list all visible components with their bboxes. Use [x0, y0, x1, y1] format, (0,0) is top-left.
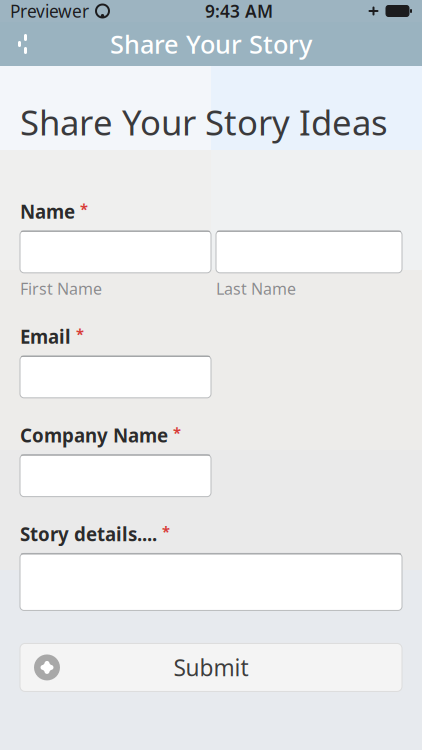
staticText: Story details.... [20, 522, 157, 546]
staticText: Previewer [10, 0, 89, 22]
staticText: * [162, 522, 170, 541]
button[interactable]: First Name [20, 231, 211, 273]
button[interactable]: Submit [20, 643, 402, 691]
staticText: Company Name [20, 423, 168, 448]
staticText: Share Your Story Ideas [20, 99, 388, 145]
button[interactable]: Back [0, 22, 44, 66]
staticText: First Name [20, 278, 102, 299]
staticText: 9:43 AM [205, 0, 273, 22]
staticText: Submit [173, 652, 248, 682]
staticText: Name [20, 199, 75, 224]
staticText: * [173, 423, 181, 442]
staticText: * [76, 324, 84, 344]
staticText: Share Your Story [110, 27, 312, 61]
staticText: * [80, 199, 88, 218]
button[interactable]: Last Name [216, 231, 402, 273]
button[interactable]: Company Name [20, 455, 211, 497]
button[interactable]: Email [20, 356, 211, 398]
staticText: Last Name [216, 278, 296, 299]
button[interactable]: Story details.... [20, 553, 402, 610]
staticText: Email [20, 324, 71, 349]
